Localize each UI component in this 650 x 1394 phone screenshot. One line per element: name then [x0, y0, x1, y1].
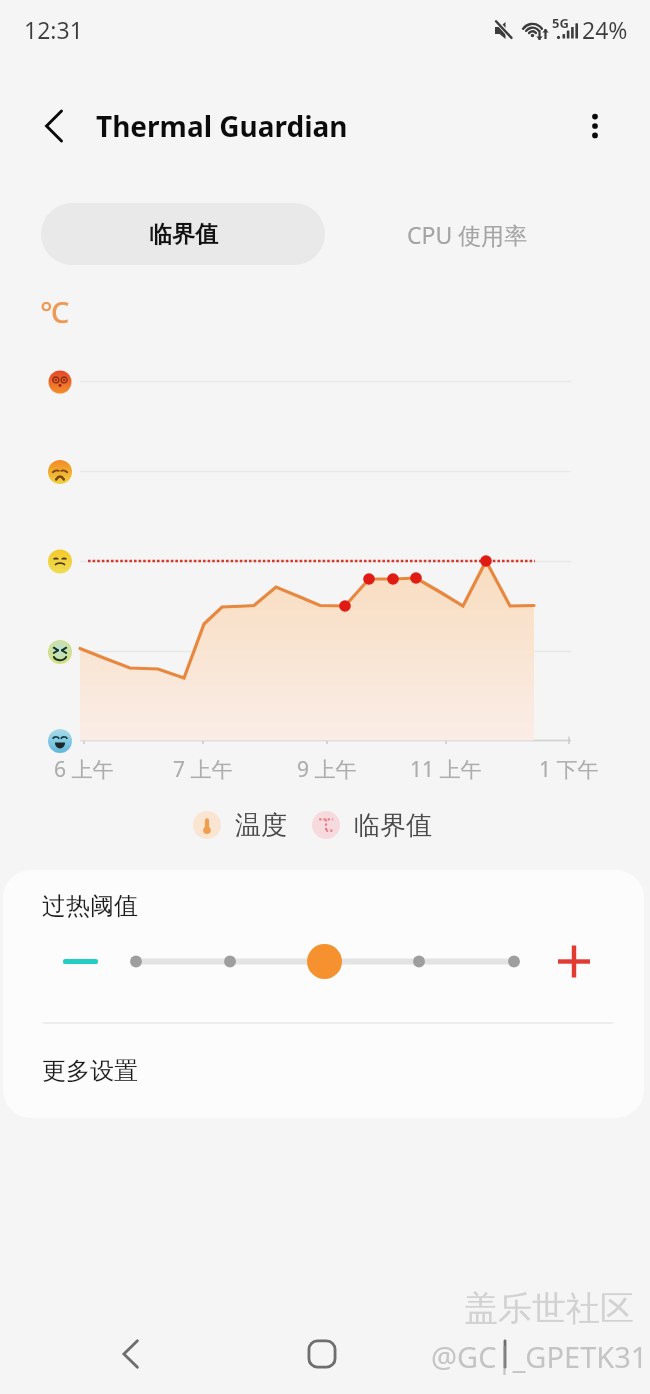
button[interactable]: More options	[571, 102, 619, 150]
staticText: ℃	[40, 292, 69, 331]
button[interactable]: Back	[29, 102, 77, 150]
staticText: 6 上午	[54, 755, 114, 784]
staticText: 温度	[235, 809, 287, 842]
button[interactable]: Back	[92, 1314, 172, 1394]
staticText: 11 上午	[410, 755, 482, 784]
staticText: 临界值	[149, 220, 218, 249]
staticText: 盖乐世社区	[464, 1287, 634, 1330]
staticText: 24%	[582, 14, 628, 45]
staticText: 5G	[552, 14, 569, 32]
staticText: 更多设置	[42, 1056, 138, 1086]
staticText: 过热阈值	[42, 891, 138, 921]
staticText: 临界值	[354, 809, 432, 842]
button[interactable]: 更多设置	[3, 1023, 644, 1118]
staticText: @GC|_GPETK31	[431, 1337, 648, 1376]
staticText: 7 上午	[173, 755, 233, 784]
staticText: 9 上午	[297, 755, 357, 784]
staticText: Thermal Guardian	[96, 107, 348, 145]
button[interactable]: Home	[282, 1314, 362, 1394]
staticText: 1 下午	[539, 755, 599, 784]
button[interactable]: 临界值	[41, 203, 325, 265]
button[interactable]: CPU 使用率	[325, 203, 609, 265]
staticText: CPU 使用率	[407, 219, 528, 250]
button[interactable]: Recents	[465, 1314, 545, 1394]
staticText: 12:31	[24, 14, 83, 45]
